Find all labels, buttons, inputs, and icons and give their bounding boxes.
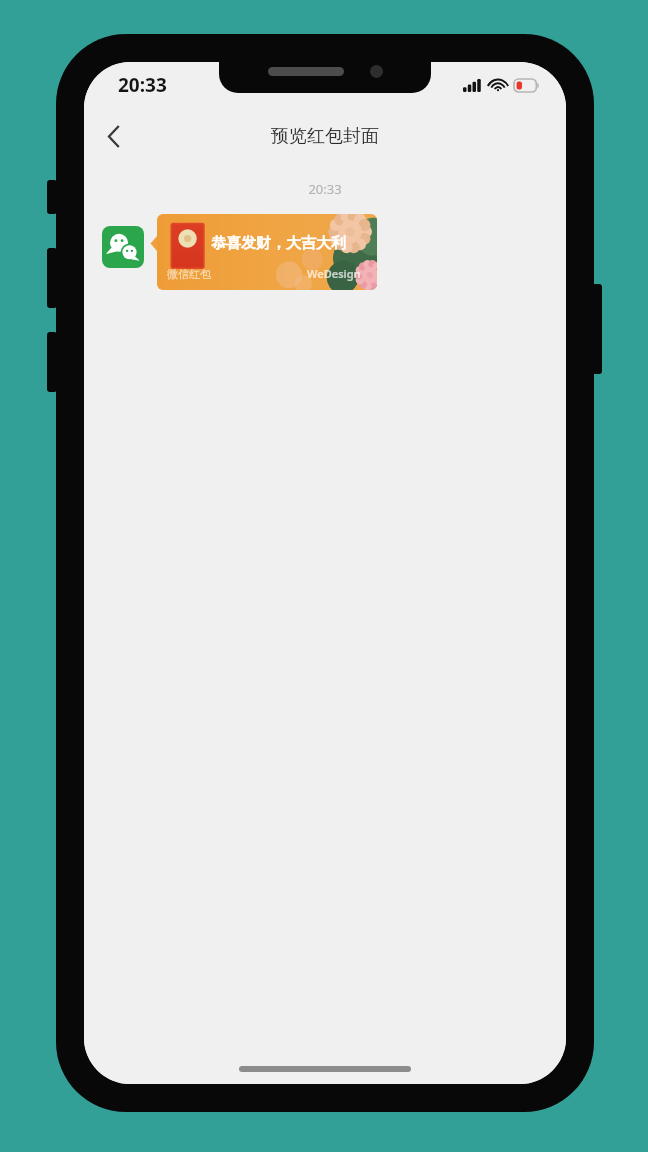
staticText: 20:33: [118, 72, 167, 98]
staticText: 预览红包封面: [271, 125, 379, 148]
button[interactable]: Back: [92, 114, 136, 158]
staticText: WeDesign: [307, 266, 361, 281]
staticText: 微信红包: [167, 267, 211, 281]
button[interactable]: 恭喜发财，大吉大利: [157, 214, 377, 290]
button[interactable]: Avatar: [102, 226, 144, 268]
staticText: 恭喜发财，大吉大利: [211, 234, 346, 253]
staticText: 20:33: [84, 180, 566, 198]
